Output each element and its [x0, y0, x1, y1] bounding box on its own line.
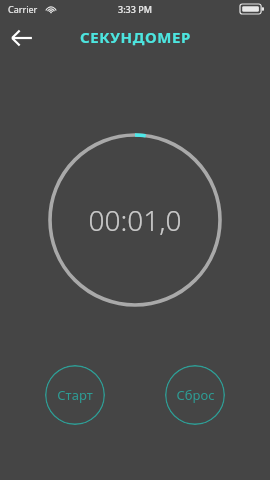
staticText: Carrier [8, 3, 38, 15]
button[interactable]: Старт [45, 365, 105, 425]
staticText: СЕКУНДОМЕР [80, 27, 191, 47]
staticText: 3:33 PM [118, 3, 152, 15]
staticText: Сброс [176, 386, 215, 404]
staticText: Старт [57, 386, 93, 404]
staticText: 00:01,0 [88, 201, 182, 239]
button[interactable]: Back [2, 18, 42, 58]
button[interactable]: Сброс [165, 365, 225, 425]
